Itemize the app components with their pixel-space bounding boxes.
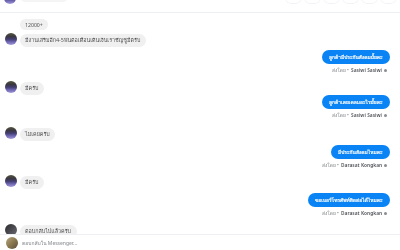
button[interactable]: มีครับ xyxy=(20,82,44,95)
staticText: Darasat Kongkan xyxy=(341,162,383,169)
button[interactable]: 12000+ xyxy=(20,19,48,30)
staticText: มีครับ xyxy=(25,178,39,187)
staticText: ตอบกลับใน Messenger... xyxy=(22,239,78,247)
button[interactable]: ตอบกลับใน Messenger... xyxy=(0,235,400,250)
staticText: ลูกค้ามีประกันสังคมมั้ยคะ xyxy=(329,53,383,61)
button[interactable] xyxy=(285,0,302,4)
button[interactable] xyxy=(323,0,340,4)
staticText: มีประกันสังคมไหมคะ xyxy=(338,148,383,156)
button[interactable]: มีประกันสังคมไหมคะ xyxy=(331,145,390,159)
button[interactable] xyxy=(304,0,321,4)
button[interactable]: มีครับ xyxy=(20,176,44,189)
staticText: ส่งโดย • xyxy=(332,66,351,74)
button[interactable]: มีงานเสริมอีก4-5พันต่อเดือนเดินเงินเราชั… xyxy=(20,34,146,47)
button[interactable]: ไม่เคยครับ xyxy=(20,128,55,141)
staticText: ตอบกลับไปแล้วครับ xyxy=(25,227,72,236)
staticText: มีงานเสริมอีก4-5พันต่อเดือนเดินเงินเราชั… xyxy=(25,36,141,45)
staticText: Darasat Kongkan xyxy=(341,210,383,217)
button[interactable] xyxy=(342,0,359,4)
staticText: Sasiwi Sasiwi xyxy=(351,67,383,74)
staticText: ส่งโดย • xyxy=(322,209,341,217)
staticText: ส่งโดย • xyxy=(322,161,341,169)
button[interactable]: ลูกค้าเคยเคลมอะไรมั้ยคะ xyxy=(322,95,390,109)
button[interactable]: ลูกค้ามีประกันสังคมมั้ยคะ xyxy=(322,50,390,64)
staticText: ส่งโดย • xyxy=(332,111,351,119)
staticText: ไม่เคยครับ xyxy=(25,130,50,139)
staticText: Sasiwi Sasiwi xyxy=(351,112,383,119)
staticText: มีครับ xyxy=(25,84,39,93)
button[interactable] xyxy=(380,0,397,4)
staticText: 12000+ xyxy=(25,21,43,28)
staticText: ขอเบอร์โทรศัพท์ติดต่อได้ไหมคะ xyxy=(315,196,383,204)
staticText: ลูกค้าเคยเคลมอะไรมั้ยคะ xyxy=(329,98,383,106)
button[interactable]: ตอบกลับไปแล้วครับ xyxy=(20,225,77,238)
button[interactable] xyxy=(361,0,378,4)
button[interactable]: ขอเบอร์โทรศัพท์ติดต่อได้ไหมคะ xyxy=(308,193,390,207)
